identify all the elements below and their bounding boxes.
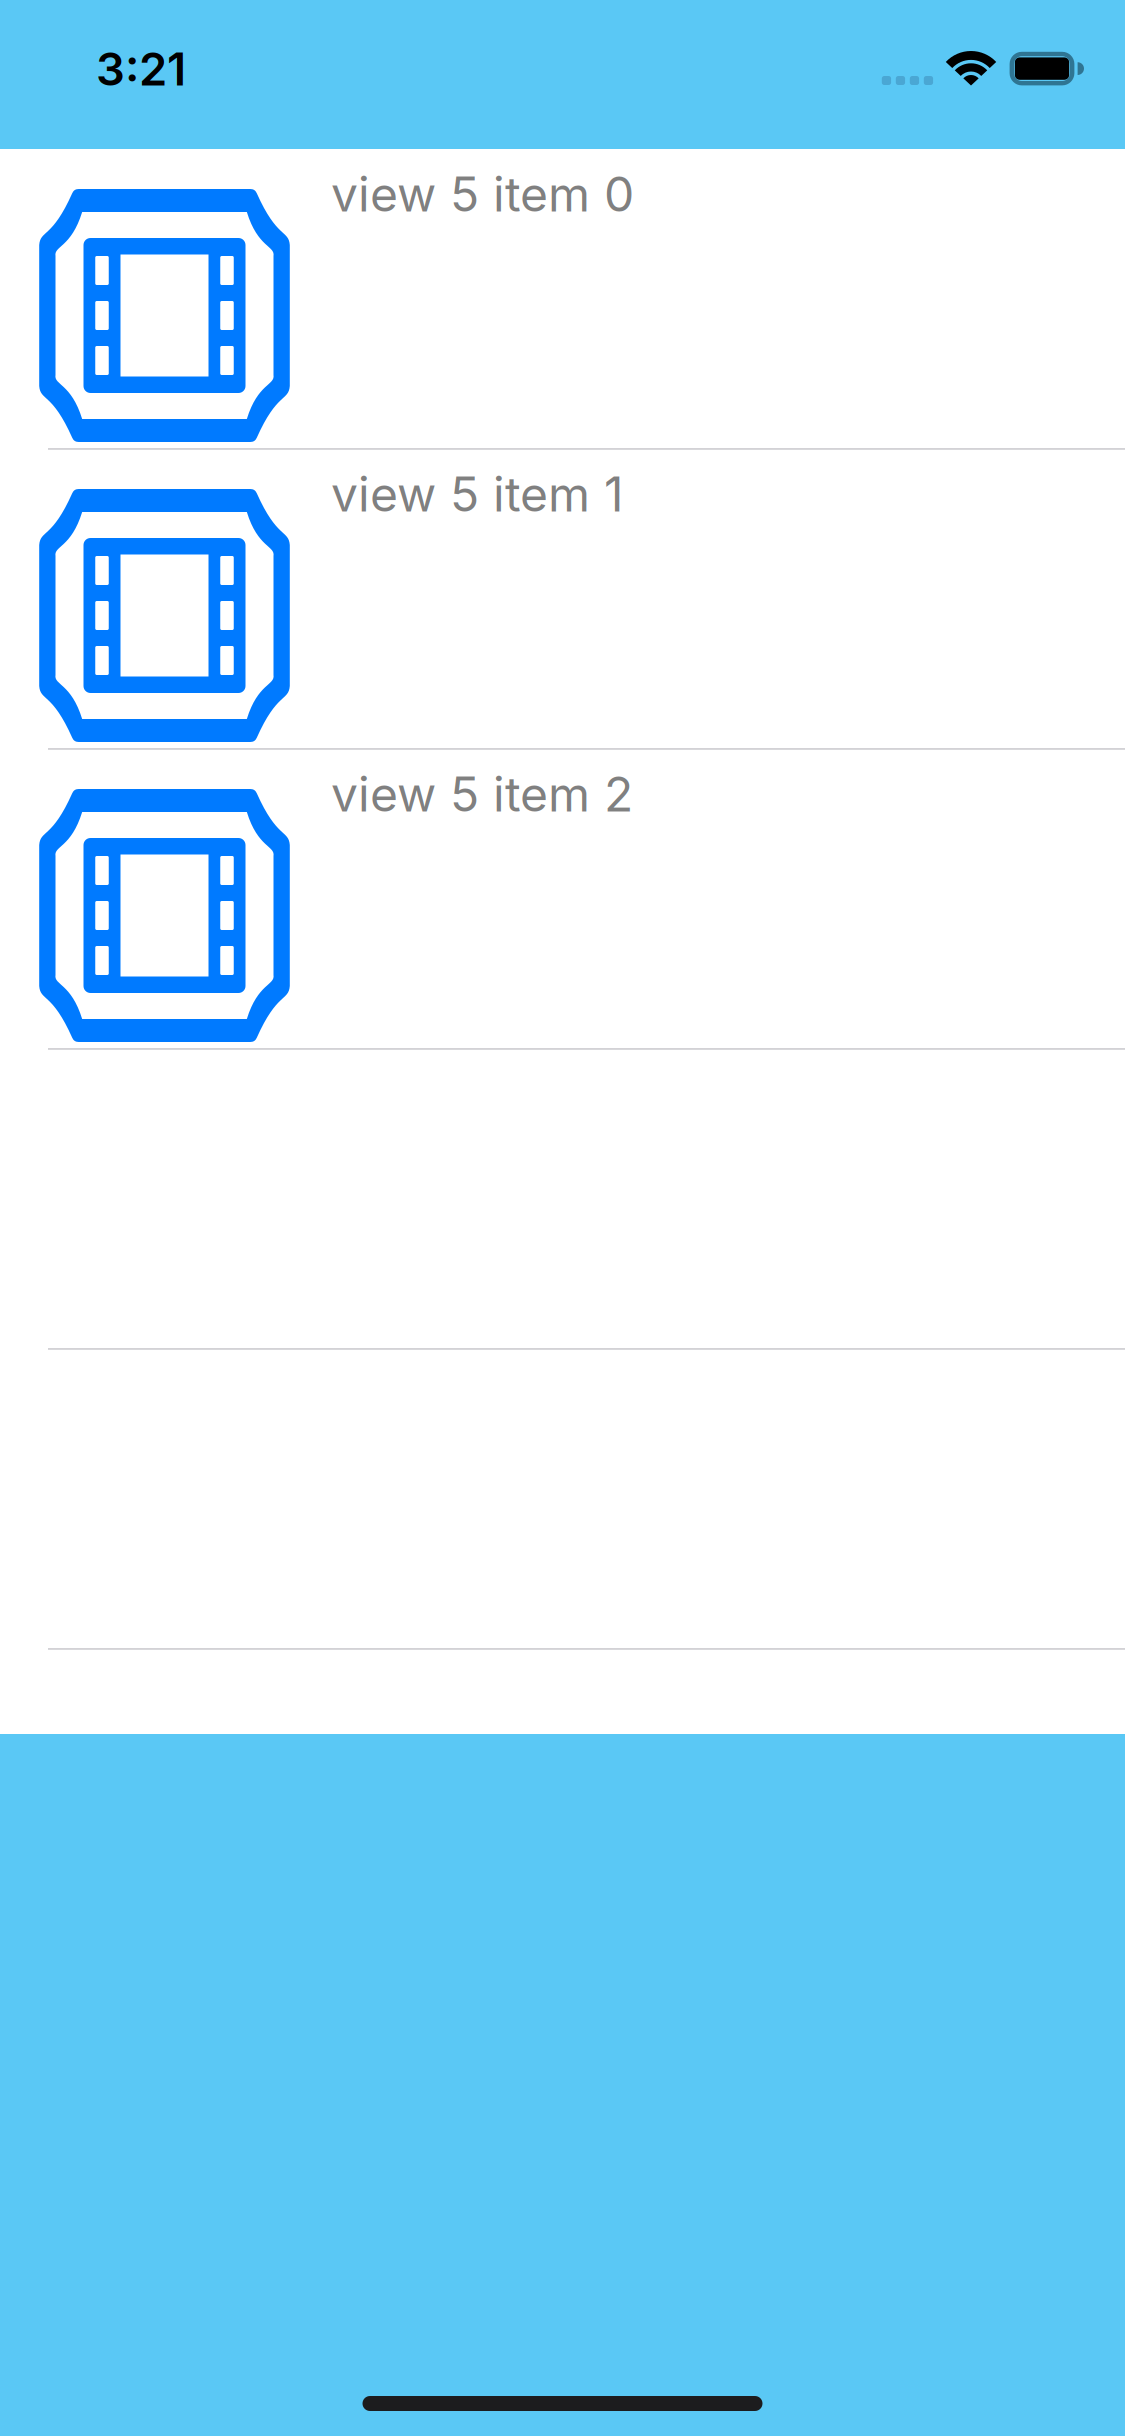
- staticText: 3:21: [96, 42, 186, 96]
- staticText: view 5 item 2: [331, 765, 633, 823]
- button[interactable]: view 5 item 0: [0, 149, 1125, 449]
- staticText: view 5 item 0: [331, 165, 634, 223]
- staticText: view 5 item 1: [331, 465, 624, 523]
- button[interactable]: view 5 item 2: [0, 749, 1125, 1049]
- button[interactable]: view 5 item 1: [0, 449, 1125, 749]
